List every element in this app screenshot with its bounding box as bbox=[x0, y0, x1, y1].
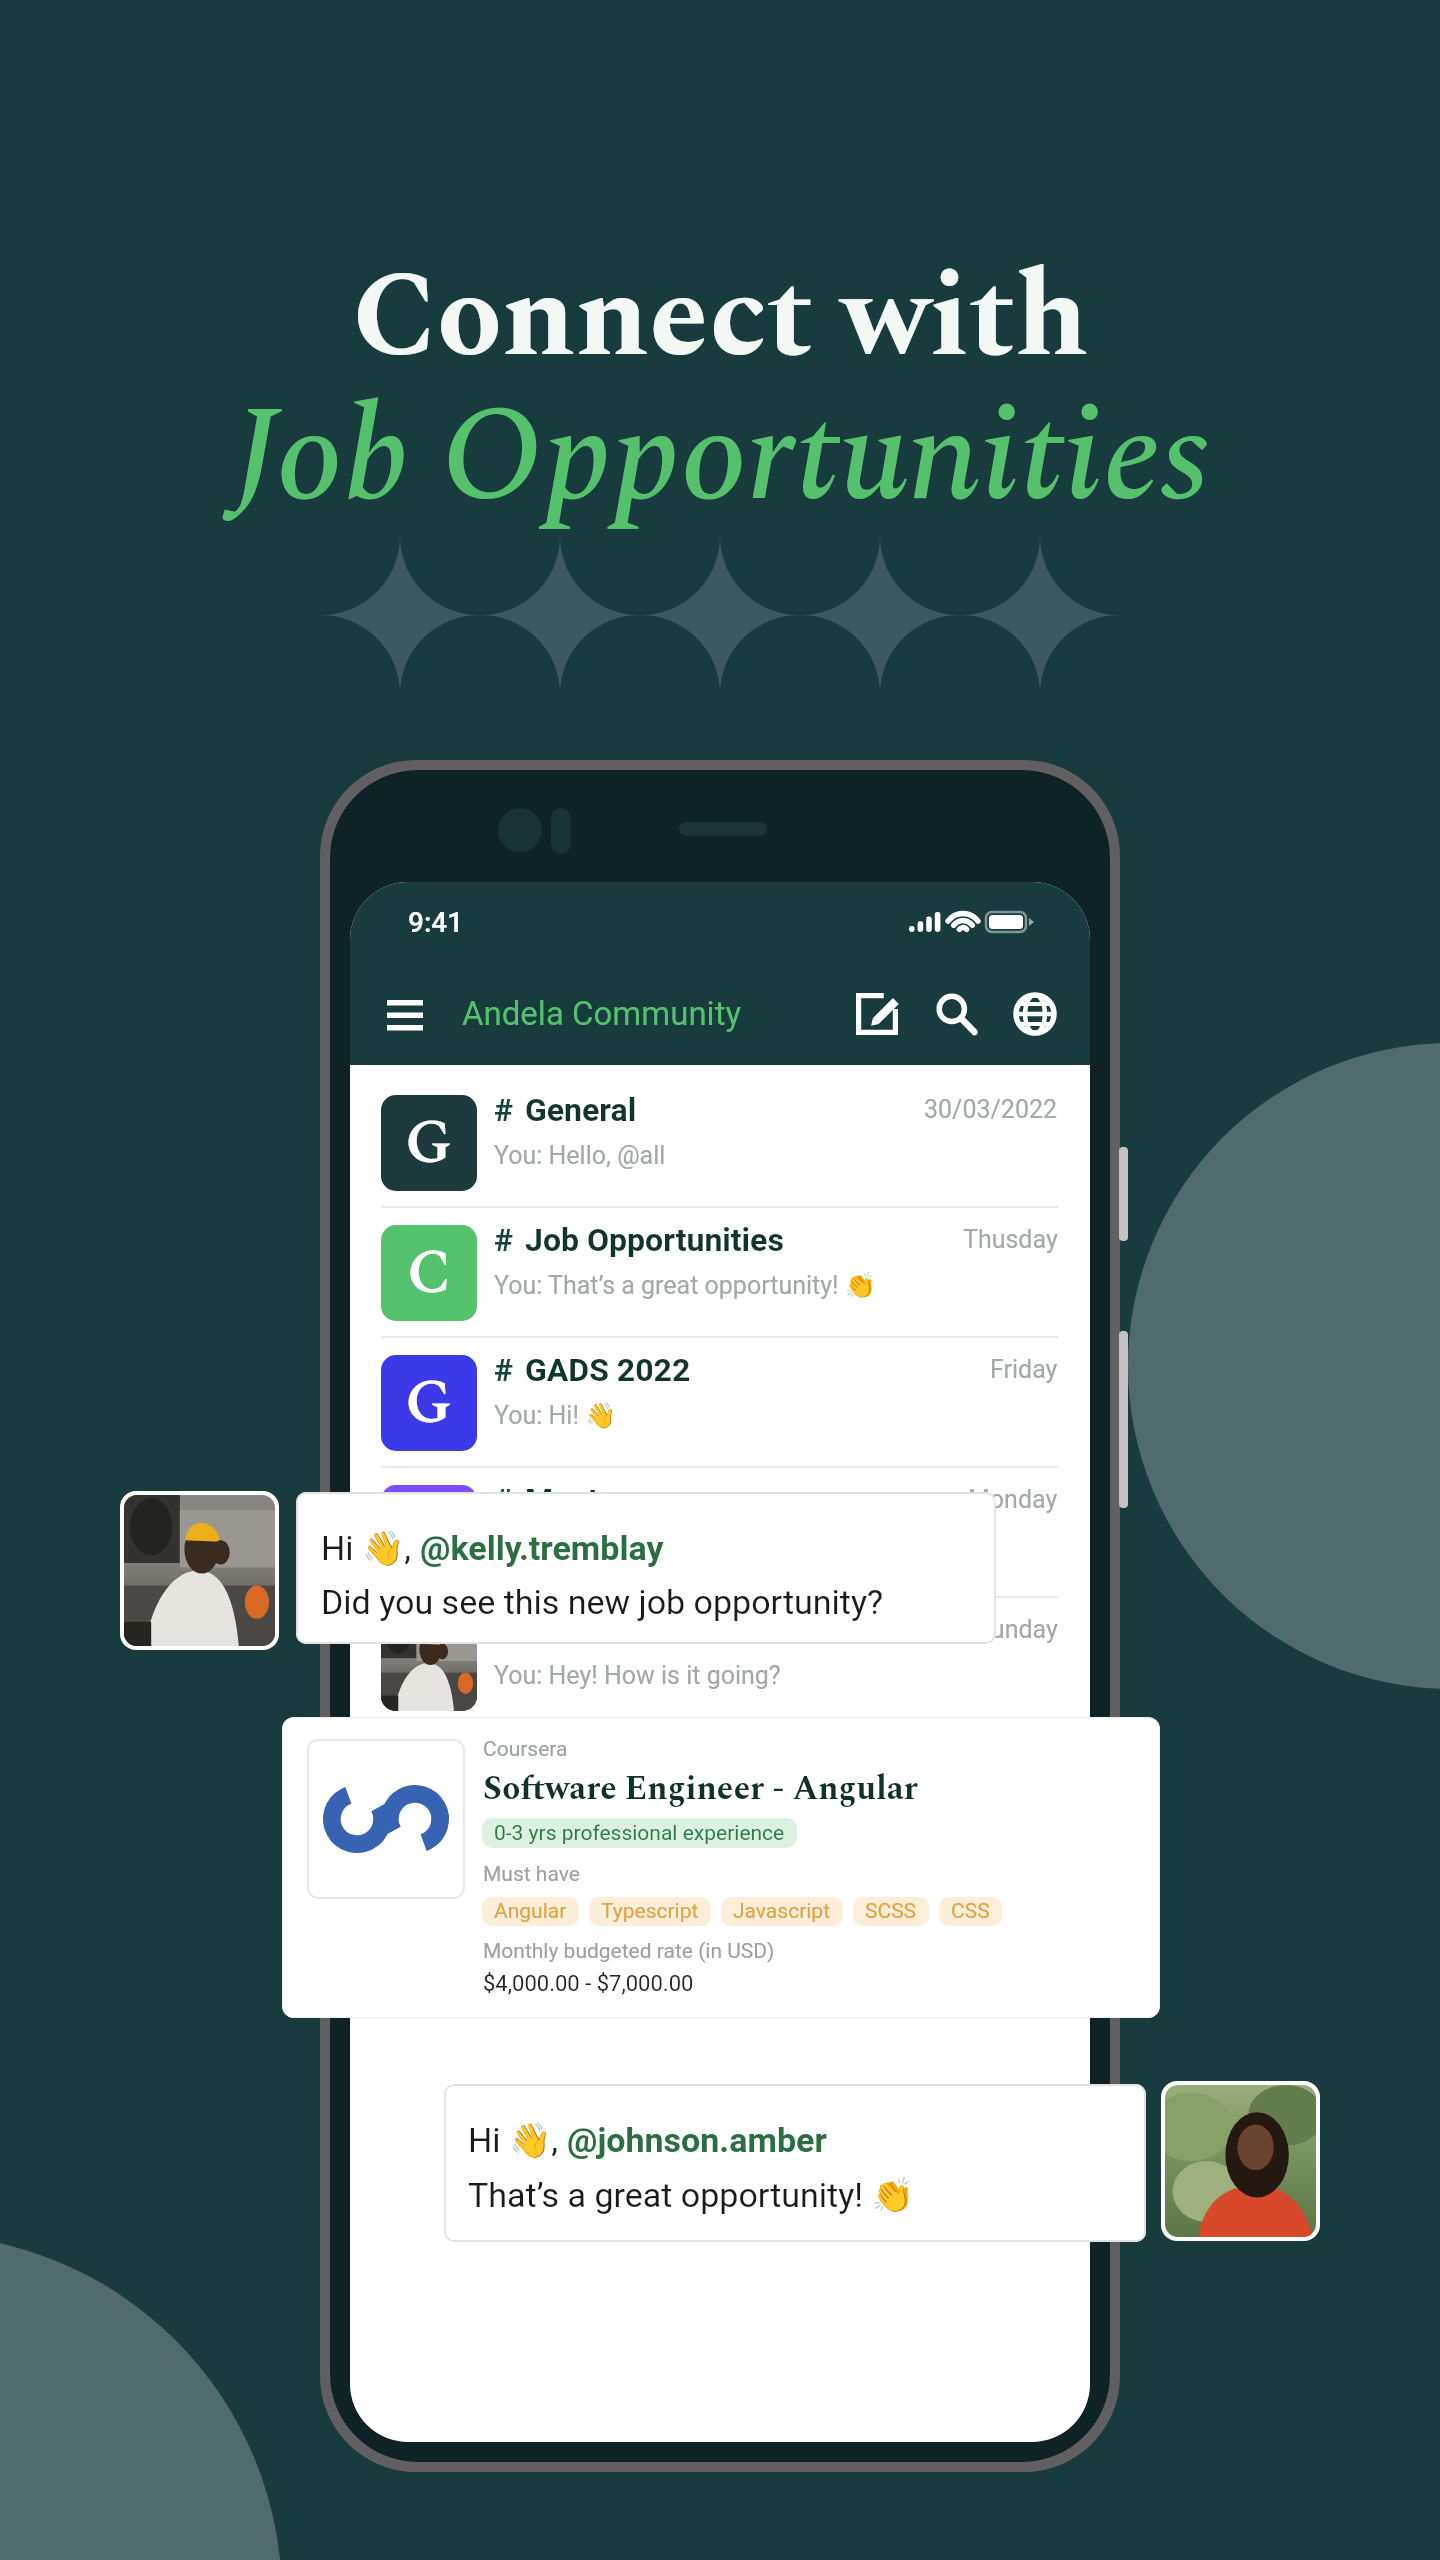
button[interactable]: Coursera bbox=[282, 1717, 1160, 2018]
staticText: You: Hi! 👋 bbox=[494, 1401, 617, 1430]
staticText: That’s a great opportunity! 👏 bbox=[468, 2175, 914, 2215]
staticText: G bbox=[405, 1356, 453, 1450]
staticText: 9:41 bbox=[408, 906, 464, 939]
staticText: You: Let’s meet bbox=[494, 1531, 663, 1560]
staticText: $4,000.00 - $7,000.00 bbox=[483, 1971, 694, 1997]
staticText: # bbox=[494, 1611, 514, 1649]
button[interactable]: G bbox=[350, 1078, 1090, 1206]
staticText: Monday bbox=[968, 1485, 1058, 1514]
staticText: You: That’s a great opportunity! 👏 bbox=[494, 1271, 876, 1300]
staticText: CSS bbox=[951, 1899, 990, 1924]
staticText: Must have bbox=[483, 1862, 580, 1887]
button[interactable]: G bbox=[350, 1338, 1090, 1466]
staticText: Meetups bbox=[525, 1481, 651, 1519]
staticText: Andela Community bbox=[462, 994, 742, 1033]
staticText: GADS 2022 bbox=[525, 1351, 691, 1389]
button[interactable]: C bbox=[350, 1208, 1090, 1336]
button[interactable]: Profile photo of Amber Johnson bbox=[1161, 2081, 1320, 2241]
staticText: C bbox=[407, 1226, 452, 1320]
staticText: Angular bbox=[494, 1899, 567, 1924]
button[interactable]: # bbox=[350, 1598, 1090, 1726]
staticText: You: Hey! How is it going? bbox=[494, 1661, 781, 1690]
staticText: Thusday bbox=[963, 1225, 1058, 1254]
staticText: M bbox=[399, 1486, 460, 1580]
staticText: 30/03/2022 bbox=[924, 1095, 1058, 1124]
staticText: Hi 👋, bbox=[468, 2120, 567, 2160]
staticText: Javascript bbox=[733, 1899, 831, 1924]
staticText: Coursera bbox=[483, 1737, 568, 1762]
staticText: # bbox=[494, 1481, 514, 1519]
staticText: G bbox=[405, 1096, 453, 1190]
staticText: Sunday bbox=[976, 1615, 1058, 1644]
button[interactable]: M bbox=[350, 1468, 1090, 1596]
staticText: # bbox=[494, 1221, 514, 1259]
staticText: Typescript bbox=[601, 1899, 699, 1924]
staticText: # bbox=[494, 1351, 514, 1389]
button[interactable]: Hi 👋, bbox=[444, 2084, 1146, 2242]
staticText: Monthly budgeted rate (in USD) bbox=[483, 1939, 775, 1964]
staticText: Job Opportunities bbox=[525, 1221, 784, 1259]
button[interactable]: Open navigation menu bbox=[372, 984, 438, 1044]
staticText: Software Engineer - Angular bbox=[483, 1764, 918, 1814]
staticText: General bbox=[525, 1091, 637, 1129]
staticText: Friday bbox=[990, 1355, 1058, 1384]
staticText: Connect with bbox=[352, 228, 1089, 409]
staticText: @johnson.amber bbox=[567, 2120, 827, 2160]
button[interactable]: Change language bbox=[1005, 984, 1065, 1044]
staticText: SCSS bbox=[865, 1899, 917, 1924]
staticText: Did you see this new job opportunity? bbox=[321, 1582, 884, 1622]
button[interactable]: New message bbox=[847, 984, 907, 1044]
staticText: You: Hello, @all bbox=[494, 1141, 666, 1170]
button[interactable]: Hi 👋, bbox=[296, 1492, 996, 1644]
staticText: # bbox=[494, 1091, 514, 1129]
staticText: Ade Johnson bbox=[525, 1611, 715, 1649]
staticText: Hi 👋, bbox=[321, 1528, 420, 1568]
button[interactable]: Profile photo of Kelly Tremblay bbox=[120, 1491, 279, 1650]
staticText: Job Opportunities bbox=[231, 357, 1209, 559]
button[interactable]: Search bbox=[926, 984, 986, 1044]
staticText: @kelly.tremblay bbox=[420, 1528, 664, 1568]
staticText: 0-3 yrs professional experience bbox=[494, 1821, 785, 1846]
